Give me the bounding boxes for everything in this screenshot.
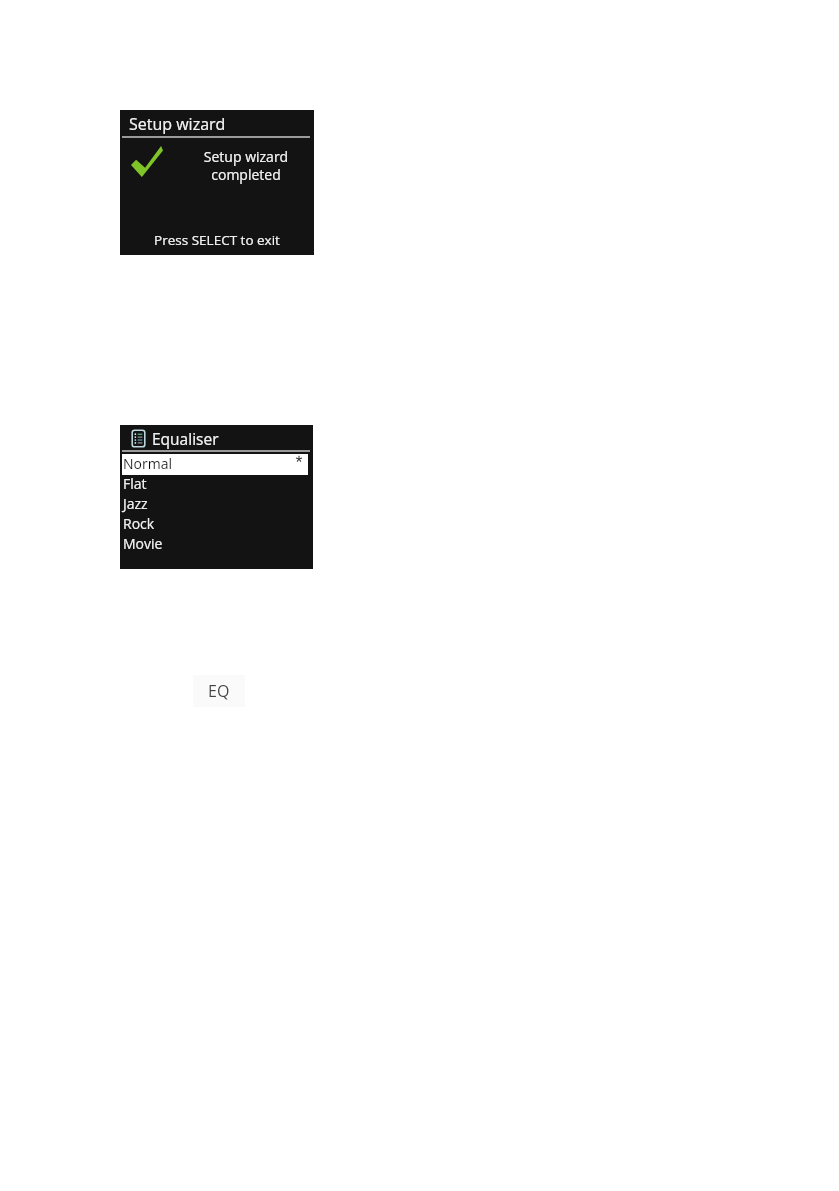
button[interactable]: Normal: [120, 452, 313, 472]
other: Menu: [131, 429, 146, 448]
other: Active preset: [295, 455, 303, 463]
staticText: Movie: [123, 534, 163, 553]
button[interactable]: Setup wizard display: [120, 110, 314, 255]
staticText: Flat: [123, 474, 147, 493]
staticText: Normal: [123, 454, 172, 473]
button[interactable]: Jazz: [120, 492, 313, 512]
staticText: EQ: [208, 680, 230, 702]
button[interactable]: EQ key: [193, 675, 245, 707]
button[interactable]: Flat: [120, 472, 313, 492]
button[interactable]: Movie: [120, 532, 313, 552]
staticText: Setup wizard: [129, 113, 226, 135]
staticText: Jazz: [123, 494, 148, 513]
staticText: Setup wizard completed: [188, 147, 304, 184]
button[interactable]: Rock: [120, 512, 313, 532]
staticText: Press SELECT to exit: [120, 231, 314, 249]
staticText: Rock: [123, 514, 155, 533]
staticText: Equaliser: [152, 428, 219, 449]
